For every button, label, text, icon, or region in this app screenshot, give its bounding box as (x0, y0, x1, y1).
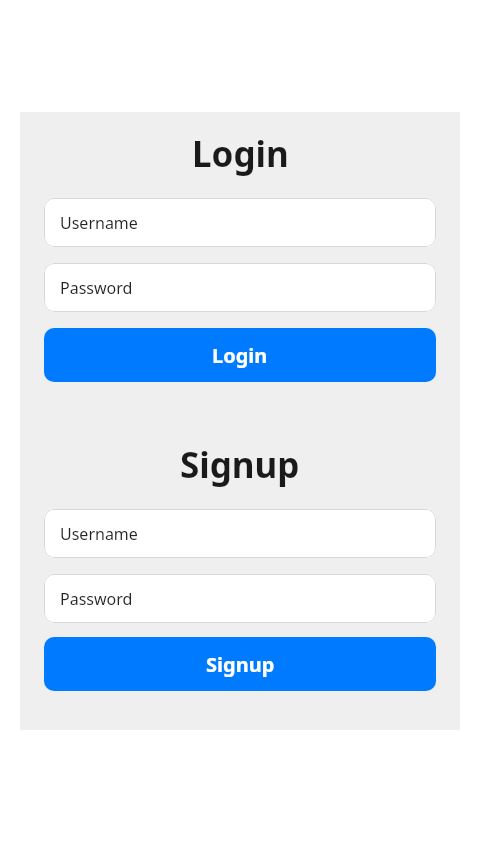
button[interactable]: Password (44, 263, 436, 312)
staticText: Password (60, 277, 133, 299)
staticText: Signup (206, 651, 275, 678)
button[interactable]: Login (44, 328, 436, 382)
staticText: Login (192, 130, 289, 178)
staticText: Login (212, 342, 268, 369)
staticText: Username (60, 212, 138, 234)
button[interactable]: Password (44, 574, 436, 623)
button[interactable]: Username (44, 509, 436, 558)
button[interactable]: Signup (44, 637, 436, 691)
staticText: Signup (180, 441, 300, 489)
button[interactable]: Username (44, 198, 436, 247)
staticText: Username (60, 523, 138, 545)
staticText: Password (60, 588, 133, 610)
